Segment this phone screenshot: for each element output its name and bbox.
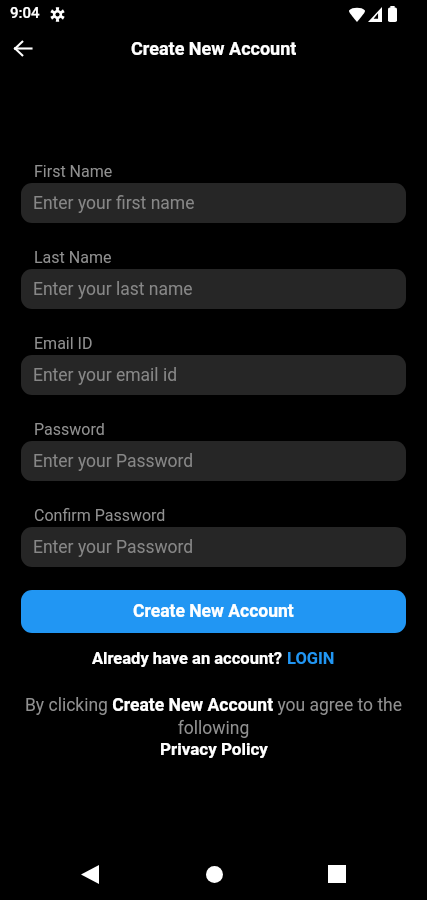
- staticText: Email ID: [34, 334, 93, 353]
- button[interactable]: LOGIN: [287, 649, 335, 668]
- button[interactable]: Recent apps: [317, 854, 357, 894]
- staticText: Enter your email id: [33, 365, 178, 386]
- staticText: Password: [34, 420, 105, 439]
- button[interactable]: Home: [194, 854, 234, 894]
- button[interactable]: Privacy Policy: [21, 739, 406, 759]
- staticText: Create New Account: [133, 601, 294, 622]
- staticText: LOGIN: [287, 649, 335, 668]
- staticText: Create New Account: [131, 38, 297, 59]
- staticText: First Name: [34, 162, 113, 181]
- staticText: Enter your Password: [33, 451, 194, 472]
- staticText: By clicking Create New Account you agree…: [21, 695, 406, 738]
- staticText: Enter your first name: [33, 193, 195, 214]
- button[interactable]: Back: [70, 854, 110, 894]
- staticText: Enter your Password: [33, 537, 194, 558]
- staticText: 9:04: [10, 4, 40, 22]
- staticText: Privacy Policy: [160, 739, 268, 759]
- staticText: Enter your last name: [33, 279, 193, 300]
- button[interactable]: Enter your last name: [21, 269, 406, 309]
- button[interactable]: Enter your email id: [21, 355, 406, 395]
- staticText: Confirm Password: [34, 506, 166, 525]
- button[interactable]: Back: [2, 27, 44, 69]
- button[interactable]: Create New Account: [21, 590, 406, 633]
- button[interactable]: Enter your Password: [21, 527, 406, 567]
- staticText: Last Name: [34, 248, 112, 267]
- button[interactable]: Enter your Password: [21, 441, 406, 481]
- staticText: Already have an account?: [92, 649, 287, 668]
- button[interactable]: Enter your first name: [21, 183, 406, 223]
